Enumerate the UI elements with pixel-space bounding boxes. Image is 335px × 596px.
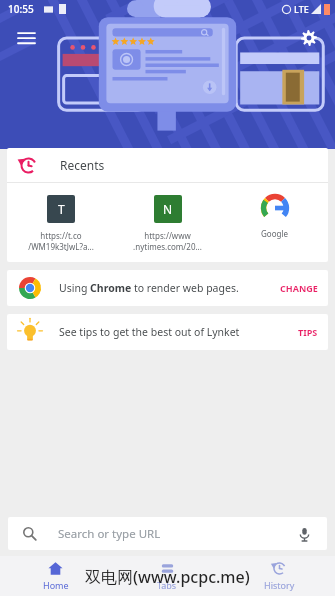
staticText: History [264, 579, 295, 591]
staticText: Search or type URL [58, 526, 295, 542]
staticText: TIPS [298, 326, 318, 338]
button[interactable]: Tabs [111, 556, 223, 596]
button[interactable]: Recents [7, 148, 328, 182]
button[interactable]: T [7, 193, 114, 254]
button[interactable]: Menu [8, 20, 44, 56]
staticText: Google [261, 228, 288, 239]
staticText: 双电网(www.pcpc.me) [85, 566, 250, 588]
button[interactable]: Voice search [295, 525, 313, 543]
staticText: Recents [60, 157, 105, 173]
button[interactable]: Home [0, 556, 111, 596]
button[interactable]: Search or type URL [8, 517, 327, 550]
staticText: https://t.co /WM19k3tJwL?a... [28, 230, 94, 252]
staticText: See tips to get the best out of Lynket [59, 325, 298, 339]
staticText: Tabs [157, 579, 177, 591]
staticText: LTE [294, 3, 309, 15]
staticText: Home [43, 579, 69, 591]
staticText: N [163, 201, 173, 217]
button[interactable]: See tips to get the best out of Lynket [7, 314, 328, 350]
staticText: 10:55 [8, 2, 34, 16]
button[interactable]: Settings [291, 20, 327, 56]
staticText: CHANGE [280, 282, 318, 294]
staticText: Using Chrome to render web pages. [59, 281, 280, 295]
button[interactable]: Using Chrome to render web pages. [7, 270, 328, 306]
button[interactable]: N [114, 193, 221, 254]
button[interactable]: Google [221, 193, 328, 241]
button[interactable]: History [223, 556, 335, 596]
staticText: T [58, 201, 65, 217]
staticText: https://www .nytimes.com/20... [133, 230, 202, 252]
